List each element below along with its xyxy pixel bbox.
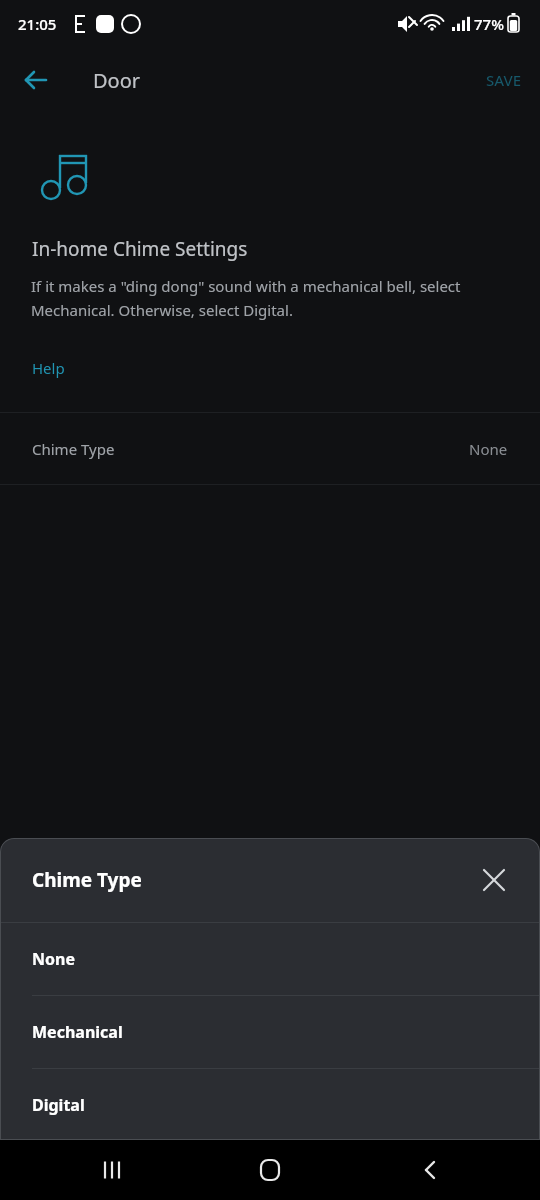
staticText: Chime Type (32, 867, 142, 893)
button[interactable]: Back (12, 56, 60, 104)
button[interactable]: Close (472, 858, 516, 902)
button[interactable]: Chime Type (0, 413, 540, 484)
staticText: 77% (474, 14, 504, 34)
staticText: None (32, 948, 75, 970)
staticText: Digital (32, 1094, 85, 1116)
staticText: Door (93, 67, 141, 94)
button[interactable]: None (0, 923, 540, 995)
button[interactable]: Mechanical (0, 996, 540, 1068)
staticText: 21:05 (18, 14, 57, 34)
button[interactable]: Back (404, 1146, 452, 1194)
staticText: Chime Type (32, 439, 115, 459)
button[interactable]: Home (246, 1146, 294, 1194)
staticText: SAVE (486, 70, 522, 90)
button[interactable]: Digital (0, 1069, 540, 1140)
staticText: In-home Chime Settings (32, 236, 248, 262)
staticText: Help (32, 358, 65, 378)
button[interactable]: Help (20, 352, 77, 384)
button[interactable]: SAVE (468, 56, 540, 104)
staticText: If it makes a "ding dong" sound with a m… (31, 276, 511, 320)
button[interactable]: Recents (88, 1146, 136, 1194)
staticText: Mechanical (32, 1021, 123, 1043)
other: Chime (36, 150, 92, 202)
staticText: None (469, 439, 508, 459)
